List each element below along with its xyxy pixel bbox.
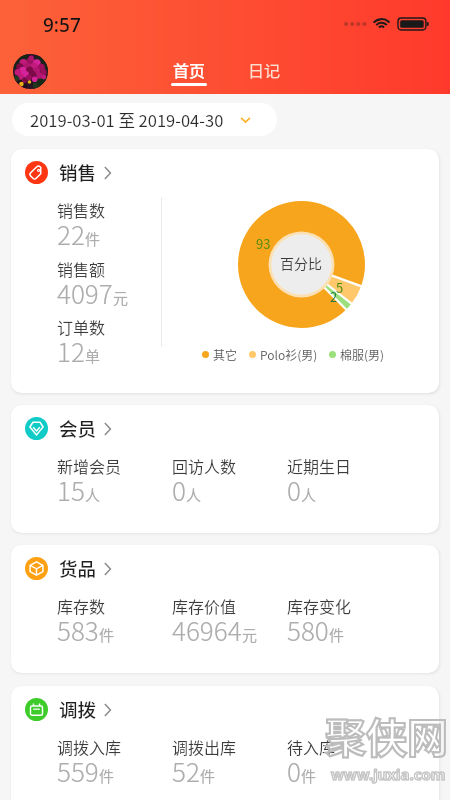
- staticText: 棉服(男): [340, 346, 385, 363]
- staticText: 件: [200, 765, 216, 787]
- staticText: 库存变化: [287, 594, 352, 617]
- button[interactable]: 销售: [11, 149, 439, 393]
- staticText: 调拨入库: [57, 735, 122, 758]
- staticText: 新增会员: [57, 454, 122, 477]
- staticText: 580: [287, 611, 329, 649]
- staticText: 订单数: [57, 315, 106, 338]
- button[interactable]: 日记: [242, 58, 286, 86]
- staticText: 559: [57, 752, 99, 790]
- button[interactable]: 货品: [25, 555, 119, 582]
- button[interactable]: 调拨: [25, 696, 119, 723]
- staticText: 52: [172, 752, 200, 790]
- staticText: 15: [57, 471, 85, 509]
- staticText: 库存数: [57, 594, 106, 617]
- staticText: 其它: [213, 346, 238, 363]
- button[interactable]: Profile: [13, 54, 48, 89]
- staticText: 5: [336, 278, 344, 297]
- staticText: 销售数: [57, 198, 106, 221]
- staticText: 近期生日: [287, 454, 352, 477]
- staticText: 0: [287, 471, 301, 509]
- staticText: 回访人数: [172, 454, 237, 477]
- staticText: 12: [57, 332, 85, 370]
- button[interactable]: 销售: [25, 159, 119, 186]
- staticText: 件: [85, 228, 101, 250]
- staticText: 库存价值: [172, 594, 237, 617]
- staticText: 0: [172, 471, 186, 509]
- staticText: 4097: [57, 274, 113, 312]
- button[interactable]: 调拨: [11, 686, 439, 800]
- staticText: 销售: [59, 159, 97, 186]
- staticText: 2: [330, 287, 338, 306]
- staticText: 件: [329, 624, 345, 646]
- staticText: 0: [287, 752, 301, 790]
- button[interactable]: 首页: [167, 58, 211, 86]
- staticText: 583: [57, 611, 99, 649]
- staticText: 93: [256, 234, 271, 253]
- button[interactable]: 会员: [25, 415, 119, 442]
- staticText: 货品: [59, 555, 97, 582]
- staticText: 件: [99, 765, 115, 787]
- staticText: 件: [99, 624, 115, 646]
- staticText: www.juxia.com: [331, 764, 446, 784]
- staticText: 会员: [59, 415, 97, 442]
- staticText: 2019-03-01 至 2019-04-30: [30, 108, 224, 132]
- staticText: 22: [57, 215, 85, 253]
- staticText: 首页: [173, 58, 206, 81]
- staticText: 销售额: [57, 257, 106, 280]
- staticText: Polo衫(男): [260, 346, 318, 363]
- staticText: 人: [85, 484, 101, 506]
- staticText: 调拨: [59, 696, 97, 723]
- staticText: 46964: [172, 611, 242, 649]
- staticText: 元: [113, 287, 129, 309]
- staticText: 人: [301, 484, 317, 506]
- staticText: 聚侠网: [325, 705, 448, 764]
- button[interactable]: 货品: [11, 545, 439, 673]
- button[interactable]: 会员: [11, 405, 439, 533]
- staticText: 9:57: [43, 12, 81, 38]
- button[interactable]: 2019-03-01 至 2019-04-30: [12, 103, 277, 136]
- staticText: 日记: [248, 58, 281, 81]
- staticText: 元: [242, 624, 258, 646]
- staticText: 单: [85, 345, 101, 367]
- staticText: 件: [301, 765, 317, 787]
- staticText: 人: [186, 484, 202, 506]
- staticText: 百分比: [280, 253, 322, 273]
- staticText: 调拨出库: [172, 735, 237, 758]
- staticText: 待入库: [287, 735, 336, 758]
